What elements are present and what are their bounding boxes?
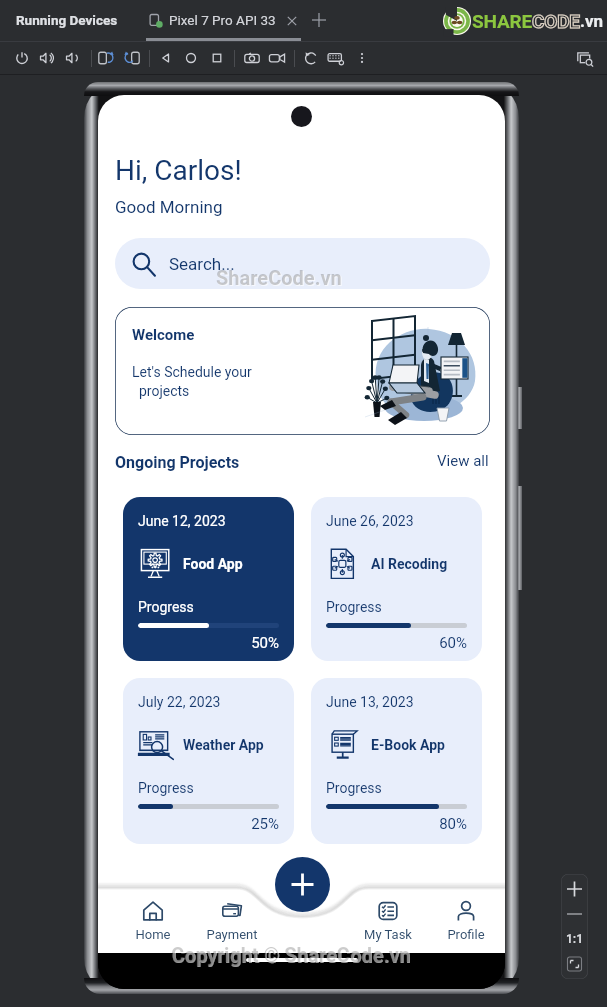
button[interactable]: Record screen [268,49,286,67]
staticText: Progress [326,599,382,615]
staticText: 1:1 [561,932,588,946]
staticText: Progress [326,780,382,796]
button[interactable]: Rotate right [123,49,141,67]
staticText: Copyright © ShareCode.vn [171,943,411,966]
staticText: Progress [138,780,194,796]
staticText: .vn [580,11,604,31]
staticText: 60% [326,634,467,652]
staticText: Food App [183,556,243,572]
staticText: AI Recoding [371,556,448,572]
staticText: Let's Schedule your [132,364,252,380]
button[interactable]: June 26, 2023 [311,497,482,661]
button[interactable]: Zoom in [561,877,588,901]
staticText: E-Book App [371,737,445,753]
staticText: CODE [532,10,580,32]
staticText: Progress [138,599,194,615]
staticText: 50% [138,634,279,652]
staticText: 80% [326,815,467,833]
staticText: My Task [354,927,422,942]
button[interactable]: Rotate left [97,49,115,67]
button[interactable]: Volume down [64,49,82,67]
staticText: July 22, 2023 [138,694,221,710]
staticText: June 26, 2023 [326,513,414,529]
staticText: SHARE [472,10,532,32]
staticText: Hi, Carlos! [115,154,242,187]
staticText: projects [132,383,190,399]
staticText: Running Devices [16,12,118,28]
staticText: Good Morning [115,197,223,217]
button[interactable]: Pixel 7 Pro API 33 [143,0,306,41]
staticText: Payment [198,927,266,942]
staticText: Welcome [132,326,195,344]
staticText: Home [119,927,187,942]
staticText: June 13, 2023 [326,694,414,710]
button[interactable]: Add [275,857,330,912]
button[interactable]: Home [119,896,187,946]
button[interactable]: Close tab [283,12,301,30]
button[interactable]: More options [353,49,371,67]
button[interactable]: Undo [302,49,320,67]
button[interactable]: Zoom to fit [576,49,594,67]
button[interactable]: Back [157,49,175,67]
staticText: ShareCode.vn [217,267,343,290]
button[interactable]: Overview [208,49,226,67]
button[interactable]: Zoom out [561,902,588,926]
button[interactable]: Screenshot [243,49,261,67]
button[interactable]: July 22, 2023 [123,678,294,844]
staticText: June 12, 2023 [138,513,226,529]
staticText: Pixel 7 Pro API 33 [169,12,276,28]
button[interactable]: Keyboard [327,49,345,67]
button[interactable]: New tab [309,10,329,30]
staticText: ShareCode.vn [216,266,342,289]
staticText: Copyright © ShareCode.vn [172,944,412,967]
button[interactable]: June 13, 2023 [311,678,482,844]
button[interactable]: Search... [115,238,490,289]
button[interactable]: Payment [198,896,266,946]
staticText: View all [437,452,489,470]
button[interactable]: My Task [354,896,422,946]
staticText: Weather App [183,737,264,753]
button[interactable]: Profile [432,896,500,946]
staticText: 25% [138,815,279,833]
button[interactable]: Fit to screen [561,952,588,976]
staticText: Ongoing Projects [115,453,240,472]
button[interactable]: View all [437,451,491,471]
button[interactable]: 1:1 [561,928,588,952]
button[interactable]: Power [13,49,31,67]
button[interactable]: Welcome [115,307,490,435]
button[interactable]: Volume up [38,49,56,67]
button[interactable]: Home [182,49,200,67]
staticText: Profile [432,927,500,942]
staticText: Search... [169,254,235,274]
button[interactable]: June 12, 2023 [123,497,294,661]
